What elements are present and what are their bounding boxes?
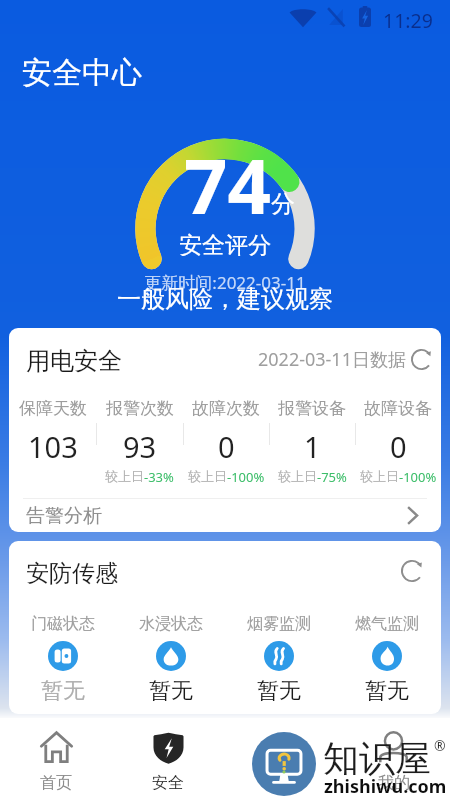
button[interactable]: 告警分析 [9,499,441,532]
button[interactable]: 水浸状态 [117,614,225,705]
staticText: -100% [227,468,265,486]
staticText: 安防传感 [26,559,118,588]
staticText: 燃气监测 [355,614,419,634]
staticText: 暂无 [365,677,409,705]
button[interactable]: Refresh sensors [400,559,424,583]
staticText: 报警次数 [106,398,174,419]
button[interactable]: 我的 [337,718,450,800]
staticText: 门磁状态 [31,614,95,634]
staticText: 1 [304,427,321,466]
staticText: 更新时间:2022-03-11 [0,271,450,294]
staticText: zhishiwu.com [324,774,447,799]
staticText: 知识屋 [323,736,431,781]
staticText: 分 [271,189,295,219]
staticText: 93 [123,427,157,466]
staticText: 保障天数 [19,398,87,419]
button[interactable]: 首页 [0,718,112,800]
button[interactable]: 燃气监测 [333,614,441,705]
staticText: 较上日 [188,468,227,484]
staticText: 首页 [40,773,72,793]
button[interactable]: 烟雾监测 [225,614,333,705]
staticText: 用电安全 [26,346,122,376]
staticText: 一般风险，建议观察 [0,284,450,314]
staticText: 安全中心 [22,54,142,92]
staticText: -100% [399,468,437,486]
staticText: 告警分析 [26,504,102,528]
staticText: 我的 [378,773,410,793]
staticText: 较上日 [105,468,144,484]
staticText: 较上日 [278,468,317,484]
button[interactable]: 门磁状态 [9,614,117,705]
button[interactable]: 消息 [224,718,337,800]
staticText: 烟雾监测 [247,614,311,634]
staticText: 消息 [265,773,297,793]
staticText: 安全评分 [0,231,450,260]
staticText: ® [434,736,446,755]
staticText: -33% [144,468,174,486]
staticText: 0 [218,427,235,466]
staticText: 较上日 [360,468,399,484]
staticText: 暂无 [41,677,85,705]
button[interactable]: 安全 [112,718,224,800]
staticText: 水浸状态 [139,614,203,634]
staticText: 报警设备 [278,398,346,419]
staticText: 暂无 [149,677,193,705]
staticText: -75% [317,468,347,486]
staticText: 0 [390,427,407,466]
button[interactable]: Refresh data [410,348,433,371]
staticText: 暂无 [257,677,301,705]
staticText: 安全 [152,773,184,793]
staticText: 74 [184,133,271,237]
staticText: 故障设备 [364,398,432,419]
staticText: 103 [28,427,78,466]
staticText: 11:29 [383,7,433,34]
staticText: 故障次数 [192,398,260,419]
staticText: 2022-03-11日数据 [258,347,406,372]
